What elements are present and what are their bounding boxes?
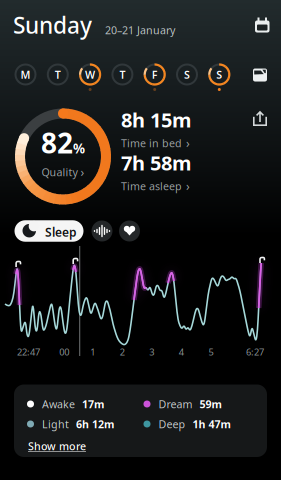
button[interactable]	[253, 68, 267, 81]
staticText: 1h 47m	[192, 417, 230, 431]
staticText: 59m	[199, 397, 221, 411]
button[interactable]: Show more	[28, 439, 86, 453]
staticText: Time asleep	[121, 179, 182, 193]
button[interactable]: M	[14, 63, 36, 85]
button[interactable]: 82	[20, 122, 106, 182]
staticText: W	[85, 67, 95, 82]
staticText: 3	[149, 346, 154, 358]
staticText: ›	[186, 135, 190, 151]
button[interactable]	[91, 220, 112, 241]
button[interactable]: W	[79, 63, 101, 85]
staticText: %	[73, 139, 85, 157]
staticText: 17m	[82, 397, 104, 411]
button[interactable]: 8h 15m	[121, 106, 192, 151]
staticText: S	[216, 67, 222, 82]
staticText: 00	[59, 346, 69, 358]
button[interactable]: 7h 58m	[121, 149, 192, 194]
staticText: Light	[42, 417, 69, 431]
button[interactable]: Sleep	[14, 220, 83, 241]
button[interactable]: T	[47, 63, 69, 85]
button[interactable]: S	[176, 63, 198, 85]
staticText: ›	[80, 164, 84, 180]
button[interactable]: T	[111, 63, 133, 85]
staticText: Quality	[41, 165, 77, 179]
staticText: ›	[186, 178, 190, 194]
staticText: M	[20, 67, 30, 82]
staticText: 6:27	[246, 346, 264, 358]
button[interactable]: S	[208, 63, 230, 85]
staticText: 2	[120, 346, 125, 358]
staticText: 4	[179, 346, 184, 358]
staticText: 7h 58m	[121, 149, 192, 176]
staticText: F	[152, 67, 158, 82]
staticText: Awake	[42, 397, 75, 411]
button[interactable]	[255, 16, 269, 31]
staticText: 5	[208, 346, 213, 358]
staticText: Sunday	[13, 10, 92, 40]
staticText: Dream	[158, 397, 192, 411]
staticText: Deep	[158, 417, 185, 431]
staticText: 82	[41, 124, 73, 161]
staticText: Time in bed	[121, 136, 182, 150]
staticText: S	[184, 67, 190, 82]
staticText: T	[55, 67, 61, 82]
staticText: T	[119, 67, 125, 82]
button[interactable]	[119, 220, 140, 241]
staticText: 22:47	[17, 346, 40, 358]
button[interactable]: F	[144, 63, 166, 85]
staticText: 6h 12m	[76, 417, 114, 431]
staticText: 1	[90, 346, 95, 358]
staticText: 8h 15m	[121, 106, 192, 133]
staticText: Sleep	[45, 224, 77, 240]
button[interactable]	[253, 111, 267, 126]
staticText: 20–21 January	[105, 23, 175, 37]
staticText: Show more	[28, 439, 86, 453]
